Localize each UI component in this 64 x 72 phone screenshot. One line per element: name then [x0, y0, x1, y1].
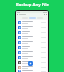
- button[interactable]: [17, 40, 47, 45]
- button[interactable]: [17, 55, 47, 60]
- button[interactable]: [17, 65, 47, 70]
- button[interactable]: [17, 60, 47, 65]
- button[interactable]: [16, 13, 48, 16]
- button[interactable]: [17, 50, 47, 55]
- button[interactable]: [17, 30, 47, 35]
- staticText: Backup Any File: [16, 2, 49, 8]
- button[interactable]: [17, 25, 47, 30]
- button[interactable]: Add backup: [28, 61, 33, 66]
- button[interactable]: [17, 35, 47, 40]
- button[interactable]: [17, 20, 47, 25]
- button[interactable]: [17, 45, 47, 50]
- button[interactable]: [17, 70, 47, 72]
- button[interactable]: [29, 17, 36, 19]
